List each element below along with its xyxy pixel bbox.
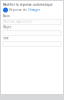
staticText: Changer: [28, 8, 40, 12]
staticText: Nom: [3, 14, 10, 18]
button[interactable]: [3, 30, 61, 35]
staticText: Modifier la réponse automatique: [3, 3, 53, 6]
staticText: Réponse de: [9, 8, 27, 12]
staticText: Objet: [3, 25, 11, 29]
staticText: Nom de l'expéditeur: [4, 20, 32, 23]
button[interactable]: Nom de l'expéditeur: [3, 19, 61, 24]
staticText: Titre: [3, 36, 9, 40]
button[interactable]: [3, 41, 61, 46]
